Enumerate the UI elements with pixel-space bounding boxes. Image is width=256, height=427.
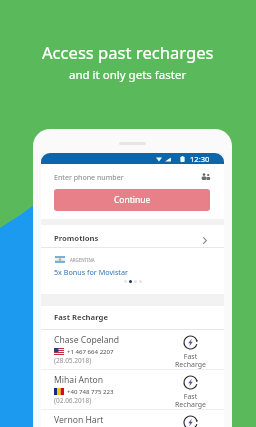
button[interactable]: Choose from contacts xyxy=(201,173,211,180)
staticText: Promotions xyxy=(54,233,99,243)
staticText: Fast Recharge xyxy=(54,312,109,322)
staticText: and it only gets faster xyxy=(69,67,187,83)
staticText: Chase Copeland xyxy=(54,334,120,346)
staticText: Continue xyxy=(114,194,151,206)
staticText: Mihai Anton xyxy=(54,374,104,386)
button[interactable]: Mihai Anton xyxy=(41,370,224,409)
staticText: Vernon Hart xyxy=(54,414,104,426)
staticText: (02.06.2018) xyxy=(54,396,92,405)
staticText: 5x Bonus for Movistar xyxy=(54,267,128,277)
button[interactable]: Vernon Hart xyxy=(41,410,224,427)
staticText: Enter phone number xyxy=(54,172,124,182)
staticText: +40 748 775 223 xyxy=(67,387,114,395)
staticText: Access past recharges xyxy=(42,41,214,64)
staticText: Fast Recharge xyxy=(175,352,206,369)
staticText: (28.05.2018) xyxy=(54,356,92,365)
staticText: Fast Recharge xyxy=(175,392,206,409)
staticText: +1 467 664 2207 xyxy=(67,347,114,355)
button[interactable]: ARGENTINA xyxy=(41,248,224,294)
staticText: 12:30 xyxy=(190,154,210,164)
staticText: ARGENTINA xyxy=(70,257,95,263)
button[interactable]: Promotions xyxy=(41,225,224,247)
button[interactable]: Continue xyxy=(54,189,210,211)
button[interactable]: Chase Copeland xyxy=(41,330,224,369)
